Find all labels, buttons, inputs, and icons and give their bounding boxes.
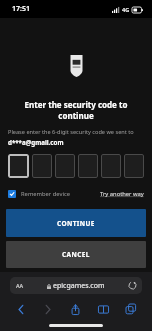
button[interactable]: CANCEL bbox=[6, 241, 146, 268]
button[interactable]: Security code digit 4 bbox=[78, 154, 98, 178]
button[interactable]: Security code digit 2 bbox=[32, 154, 52, 178]
button[interactable]: Remember device bbox=[8, 190, 70, 198]
staticText: CONTINUE bbox=[57, 219, 95, 228]
button[interactable]: Try another way bbox=[100, 190, 144, 198]
staticText: Please enter the 6-digit security code w… bbox=[8, 128, 134, 136]
staticText: Try another way bbox=[100, 190, 144, 198]
button[interactable]: Reload bbox=[128, 281, 137, 290]
button[interactable]: CONTINUE bbox=[6, 209, 146, 237]
button[interactable]: AA bbox=[10, 277, 142, 294]
staticText: 4G bbox=[122, 6, 130, 13]
button[interactable]: Security code digit 3 bbox=[55, 154, 75, 178]
staticText: AA bbox=[16, 282, 24, 289]
button[interactable]: Bookmarks bbox=[89, 299, 117, 319]
button[interactable]: Security code digit 6 bbox=[124, 154, 144, 178]
staticText: Enter the security code to continue bbox=[6, 99, 146, 121]
staticText: d***a@gmail.com bbox=[8, 138, 64, 146]
button[interactable]: Security code digit 1 bbox=[8, 154, 29, 178]
button[interactable]: Security code digit 5 bbox=[101, 154, 121, 178]
staticText: CANCEL bbox=[62, 250, 90, 259]
button[interactable]: Forward bbox=[34, 299, 61, 319]
button[interactable]: Share bbox=[61, 299, 89, 319]
staticText: 17:51 bbox=[12, 4, 30, 14]
button[interactable]: Tabs bbox=[117, 299, 145, 319]
button[interactable]: Back bbox=[7, 299, 34, 319]
staticText: epicgames.com bbox=[53, 281, 105, 291]
staticText: Remember device bbox=[21, 190, 70, 198]
